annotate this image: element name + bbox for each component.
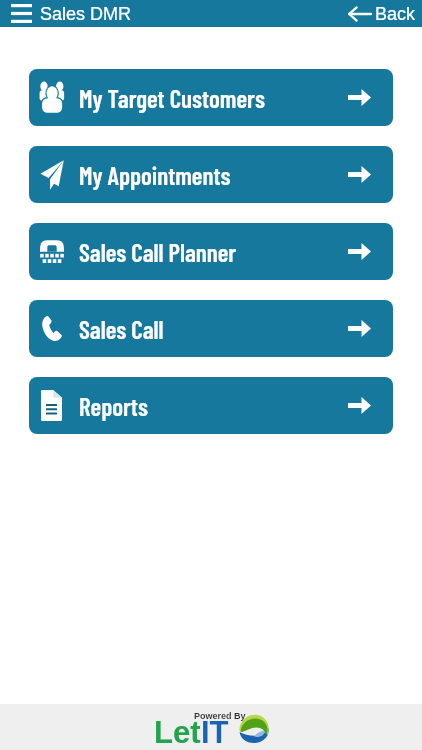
button[interactable]: My Appointments — [29, 146, 393, 203]
button[interactable]: Sales Call — [29, 300, 393, 357]
staticText: My Target Customers — [79, 83, 265, 113]
staticText: Reports — [79, 391, 148, 421]
staticText: Sales Call — [79, 314, 164, 344]
staticText: Back — [375, 4, 416, 24]
button[interactable]: Back — [348, 4, 416, 24]
staticText: Powered By — [194, 711, 246, 721]
staticText: Sales DMR — [40, 4, 132, 24]
button[interactable]: Open navigation menu — [5, 0, 38, 27]
button[interactable]: Sales Call Planner — [29, 223, 393, 280]
staticText: My Appointments — [79, 160, 231, 190]
staticText: Sales Call Planner — [79, 237, 237, 267]
staticText: Let — [154, 715, 201, 746]
button[interactable]: My Target Customers — [29, 69, 393, 126]
button[interactable]: Reports — [29, 377, 393, 434]
staticText: IT — [201, 715, 229, 746]
